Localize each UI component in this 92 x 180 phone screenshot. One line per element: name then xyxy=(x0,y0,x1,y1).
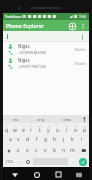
button[interactable]: Emoji xyxy=(24,156,32,167)
button[interactable]: 0 xyxy=(80,123,89,134)
staticText: 2 xyxy=(14,124,16,127)
button[interactable]: Nigss xyxy=(3,42,89,56)
button[interactable]: Shift xyxy=(3,145,14,156)
button[interactable]: nia xyxy=(3,115,28,123)
staticText: i xyxy=(66,127,68,134)
staticText: f xyxy=(36,136,38,143)
staticText: q xyxy=(5,127,9,134)
button[interactable]: 6 xyxy=(44,123,53,134)
staticText: y xyxy=(47,127,50,134)
button[interactable]: l xyxy=(77,134,86,145)
staticText: j xyxy=(63,136,65,143)
button[interactable]: g xyxy=(41,134,50,145)
button[interactable]: Hide keyboard xyxy=(73,169,84,180)
staticText: p xyxy=(83,127,87,134)
button[interactable]: Add contact xyxy=(67,21,77,31)
staticText: 4 xyxy=(31,124,33,127)
staticText: n xyxy=(62,147,66,154)
button[interactable]: s xyxy=(14,134,23,145)
staticText: m xyxy=(70,147,75,154)
button[interactable]: b xyxy=(50,145,59,156)
staticText: 7:53 xyxy=(79,14,87,19)
button[interactable]: x xyxy=(23,145,32,156)
button[interactable]: n xyxy=(59,145,68,156)
button[interactable]: 8 xyxy=(62,123,71,134)
staticText: g xyxy=(44,136,48,143)
button[interactable]: ?123 xyxy=(4,157,15,166)
button[interactable]: Search options xyxy=(3,31,89,42)
button[interactable]: Delete xyxy=(77,145,89,156)
button[interactable]: f xyxy=(32,134,41,145)
button[interactable]: h xyxy=(50,134,59,145)
staticText: h xyxy=(53,136,57,143)
button[interactable]: . xyxy=(69,156,77,167)
button[interactable]: 1 xyxy=(3,123,11,134)
staticText: t xyxy=(39,127,41,134)
staticText: r xyxy=(30,127,33,134)
staticText: , xyxy=(19,158,21,165)
staticText: nia xyxy=(13,117,19,122)
staticText: d xyxy=(26,136,30,143)
staticText: 1 xyxy=(6,124,8,127)
button[interactable]: c xyxy=(32,145,41,156)
staticText: w xyxy=(13,127,17,134)
button[interactable]: k xyxy=(68,134,77,145)
button[interactable]: 9 xyxy=(71,123,80,134)
button[interactable]: z xyxy=(14,145,23,156)
staticText: v xyxy=(44,147,47,154)
staticText: 8 xyxy=(66,124,68,127)
staticText: +918717587226 xyxy=(18,64,47,69)
staticText: Nigss xyxy=(18,43,30,49)
staticText: l xyxy=(81,136,83,143)
staticText: only xyxy=(37,117,45,122)
staticText: c xyxy=(35,147,38,154)
staticText: k xyxy=(71,136,74,143)
button[interactable]: d xyxy=(23,134,32,145)
button[interactable]: 5 xyxy=(35,123,44,134)
staticText: Phone Explorer xyxy=(6,22,44,29)
button[interactable]: only xyxy=(28,115,54,123)
button[interactable]: More options xyxy=(78,21,87,30)
staticText: o xyxy=(74,127,78,134)
button[interactable]: 4 xyxy=(27,123,35,134)
button[interactable]: Enter xyxy=(79,158,87,166)
button[interactable]: j xyxy=(59,134,68,145)
staticText: b xyxy=(53,147,57,154)
button[interactable]: v xyxy=(41,145,50,156)
button[interactable]: view xyxy=(54,115,80,123)
staticText: 7 xyxy=(57,124,59,127)
staticText: view xyxy=(63,117,71,122)
staticText: z xyxy=(17,147,20,154)
staticText: a xyxy=(9,136,12,143)
staticText: Mobile xyxy=(75,61,86,66)
button[interactable]: a xyxy=(6,134,14,145)
button[interactable]: 3 xyxy=(19,123,27,134)
button[interactable]: 7 xyxy=(53,123,62,134)
staticText: s xyxy=(17,136,20,143)
staticText: ?123 xyxy=(6,160,13,164)
staticText: 5 xyxy=(39,124,41,127)
button[interactable]: Voice input xyxy=(80,115,89,123)
button[interactable]: Nigss xyxy=(3,56,89,70)
staticText: 0 xyxy=(84,124,86,127)
staticText: Mobile xyxy=(75,47,86,52)
staticText: Vodafone IN xyxy=(5,14,27,19)
button[interactable]: Search options xyxy=(78,33,86,41)
button[interactable]: , xyxy=(16,156,24,167)
button[interactable]: Recents xyxy=(53,169,64,180)
staticText: 9 xyxy=(75,124,77,127)
staticText: x xyxy=(26,147,29,154)
button[interactable]: Back xyxy=(9,169,20,180)
staticText: +918590483900 xyxy=(18,50,47,55)
button[interactable]: 2 xyxy=(11,123,19,134)
staticText: u xyxy=(56,127,60,134)
staticText: 6 xyxy=(48,124,50,127)
button[interactable]: Home xyxy=(31,169,42,180)
staticText: . xyxy=(72,158,74,165)
staticText: 3 xyxy=(23,124,25,127)
staticText: Nigss xyxy=(18,57,30,63)
button[interactable]: m xyxy=(68,145,77,156)
staticText: e xyxy=(22,127,25,134)
